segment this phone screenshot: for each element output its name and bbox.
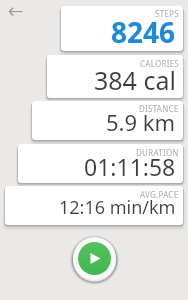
staticText: DURATION <box>136 147 179 158</box>
staticText: DISTANCE <box>139 103 179 114</box>
button[interactable]: CALORIES <box>47 55 183 98</box>
staticText: CALORIES <box>140 58 179 69</box>
button[interactable]: DISTANCE <box>32 101 183 140</box>
staticText: 5.9 km <box>106 107 176 137</box>
staticText: 8246 <box>111 13 176 51</box>
button[interactable]: Start workout <box>67 231 122 286</box>
staticText: STEPS <box>155 8 179 19</box>
staticText: AVG.PACE <box>140 189 179 200</box>
staticText: 12:16 min/km <box>59 195 176 220</box>
button[interactable]: AVG.PACE <box>5 186 183 225</box>
button[interactable]: Back <box>1 1 23 23</box>
button[interactable]: DURATION <box>18 144 183 183</box>
staticText: 01:11:58 <box>84 151 176 182</box>
staticText: 384 cal <box>94 63 176 97</box>
button[interactable]: STEPS <box>61 6 183 51</box>
